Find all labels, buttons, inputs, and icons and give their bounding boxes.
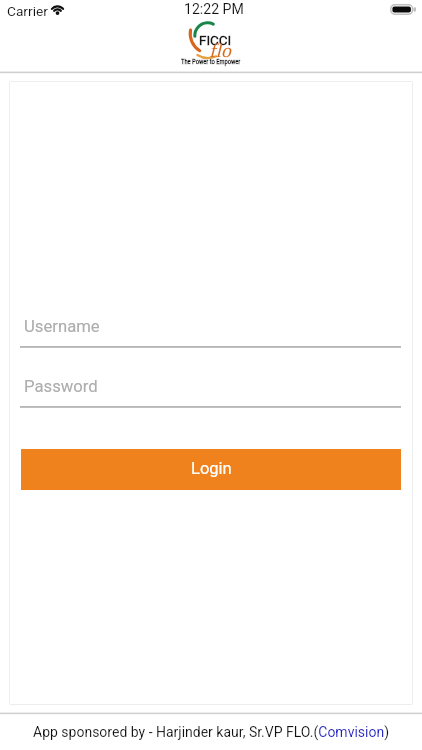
staticText: Carrier bbox=[7, 3, 48, 19]
other: Battery full bbox=[390, 4, 416, 15]
staticText: The Power to Empower bbox=[181, 58, 241, 66]
staticText: App sponsored by - Harjinder kaur, Sr.VP… bbox=[33, 724, 390, 740]
other: Wi-Fi signal bbox=[50, 4, 65, 15]
staticText: FICCI bbox=[199, 33, 232, 49]
button[interactable]: Login bbox=[21, 449, 401, 490]
staticText: flo bbox=[209, 40, 231, 62]
staticText: 12:22 PM bbox=[184, 1, 244, 18]
button[interactable]: Username bbox=[20, 313, 401, 348]
button[interactable]: Password bbox=[20, 373, 401, 408]
staticText: Login bbox=[191, 459, 232, 478]
staticText: Username bbox=[24, 317, 100, 337]
staticText: Password bbox=[24, 377, 98, 397]
